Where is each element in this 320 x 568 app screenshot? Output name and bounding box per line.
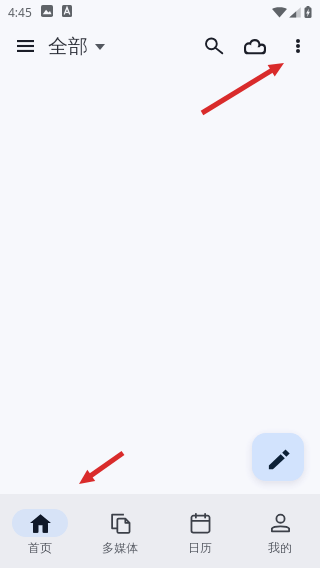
button[interactable]: Search: [196, 29, 232, 65]
staticText: 4:45: [8, 4, 32, 20]
button[interactable]: 多媒体: [80, 494, 160, 568]
button[interactable]: 全部: [48, 34, 107, 59]
staticText: 首页: [28, 540, 52, 555]
button[interactable]: Menu: [5, 27, 45, 67]
staticText: 全部: [48, 34, 88, 59]
button[interactable]: Cloud: [237, 29, 273, 65]
button[interactable]: Compose: [252, 433, 304, 481]
button[interactable]: More options: [280, 29, 316, 65]
button[interactable]: 首页: [0, 494, 80, 568]
staticText: 多媒体: [102, 540, 138, 555]
button[interactable]: 日历: [160, 494, 240, 568]
staticText: 日历: [188, 540, 212, 555]
button[interactable]: 我的: [240, 494, 320, 568]
staticText: 我的: [268, 540, 292, 555]
